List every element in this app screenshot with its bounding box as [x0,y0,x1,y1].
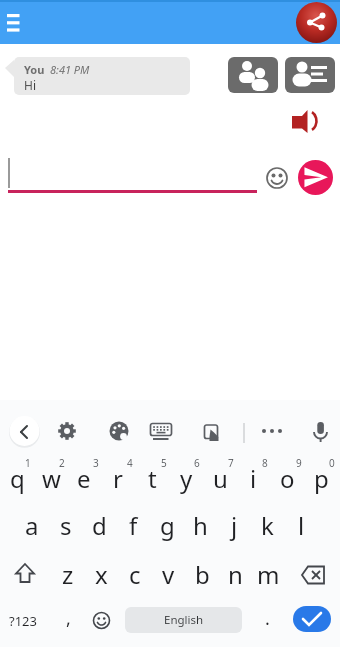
button[interactable]: English [125,607,242,633]
button[interactable]: x [84,550,118,598]
staticText: v [162,558,175,591]
button[interactable] [228,57,278,93]
button[interactable]: w [34,454,68,502]
staticText: o [280,462,295,495]
button[interactable]: d [82,501,116,549]
staticText: e [77,462,91,495]
staticText: w [42,462,61,495]
button[interactable]: ?123 [2,601,44,641]
button[interactable]: e [67,454,101,502]
button[interactable]: c [118,550,152,598]
staticText: f [129,509,138,542]
staticText: k [261,509,274,542]
staticText: 6 [194,456,200,470]
staticText: x [95,558,108,591]
button[interactable]: o [270,454,304,502]
button[interactable] [149,422,173,442]
staticText: g [160,509,175,542]
button[interactable] [9,416,40,447]
staticText: 4 [127,456,133,470]
staticText: 8 [262,456,268,470]
button[interactable]: i [236,454,270,502]
button[interactable]: q [0,454,34,502]
button[interactable] [258,422,286,440]
button[interactable]: p [304,454,338,502]
staticText: p [314,462,329,495]
button[interactable]: j [217,501,251,549]
button[interactable]: z [51,550,85,598]
button[interactable]: y [169,454,203,502]
button[interactable]: , [51,594,85,642]
button[interactable]: k [250,501,284,549]
button[interactable]: . [250,594,284,642]
staticText: m [257,558,280,591]
button[interactable] [2,9,28,35]
staticText: c [129,558,141,591]
staticText: ?123 [9,612,37,630]
staticText: i [250,462,257,495]
staticText: l [298,509,305,542]
button[interactable] [108,420,130,442]
staticText: u [213,462,228,495]
staticText: 5 [161,456,167,470]
button[interactable]: l [284,501,318,549]
button[interactable] [296,2,337,43]
button[interactable] [56,420,78,442]
button[interactable]: n [218,550,252,598]
staticText: y [180,462,193,495]
staticText: a [25,509,39,542]
button[interactable]: f [116,501,150,549]
staticText: 3 [93,456,99,470]
button[interactable]: b [185,550,219,598]
staticText: You [24,62,45,77]
staticText: s [60,509,72,542]
staticText: d [92,509,107,542]
button[interactable] [8,558,42,592]
staticText: . [265,606,270,631]
staticText: English [164,612,204,628]
button[interactable] [298,160,333,195]
button[interactable]: You [14,57,190,95]
staticText: r [113,462,123,495]
staticText: q [10,462,25,495]
button[interactable] [293,606,331,632]
button[interactable] [203,423,220,442]
button[interactable]: g [150,501,184,549]
staticText: 1 [25,456,31,470]
button[interactable]: u [203,454,237,502]
staticText: b [195,558,210,591]
button[interactable]: m [251,550,285,598]
staticText: n [228,558,243,591]
staticText: 0 [329,456,335,470]
button[interactable]: s [49,501,83,549]
staticText: z [62,558,74,591]
button[interactable] [92,611,111,630]
button[interactable]: t [135,454,169,502]
staticText: 2 [59,456,65,470]
button[interactable]: v [151,550,185,598]
button[interactable]: h [183,501,217,549]
button[interactable]: a [15,501,49,549]
staticText: 7 [228,456,234,470]
button[interactable] [310,419,331,445]
button[interactable] [296,558,330,592]
staticText: t [148,462,157,495]
staticText: Hi [24,77,36,93]
button[interactable]: r [101,454,135,502]
staticText: 8:41 PM [50,62,90,77]
staticText: h [193,509,208,542]
staticText: 9 [296,456,302,470]
button[interactable] [285,57,335,93]
staticText: j [231,509,238,542]
button[interactable] [266,167,288,189]
staticText: , [66,606,71,631]
button[interactable] [289,104,317,132]
